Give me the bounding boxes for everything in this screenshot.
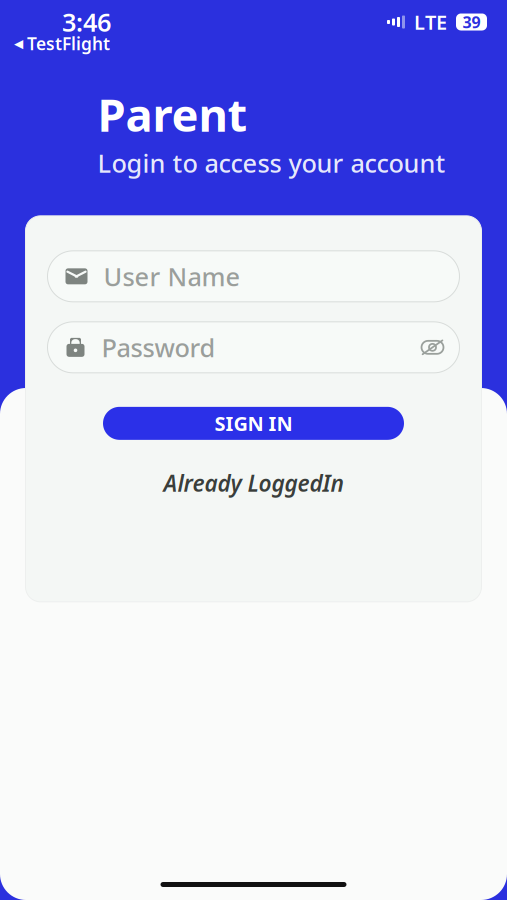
staticText: 3:46 <box>62 5 111 39</box>
staticText: LTE <box>414 9 447 35</box>
staticText: SIGN IN <box>214 410 292 437</box>
staticText: User Name <box>103 259 240 293</box>
button[interactable]: Already LoggedIn <box>163 470 343 496</box>
staticText: Password <box>101 330 215 364</box>
staticText: Login to access your account <box>97 146 445 180</box>
button[interactable]: Show password <box>415 330 449 364</box>
staticText: 39 <box>462 11 480 33</box>
button[interactable]: SIGN IN <box>103 407 404 440</box>
staticText: ◀ <box>14 37 23 50</box>
staticText: Already LoggedIn <box>163 468 343 498</box>
staticText: TestFlight <box>27 32 110 55</box>
staticText: Parent <box>97 84 247 144</box>
